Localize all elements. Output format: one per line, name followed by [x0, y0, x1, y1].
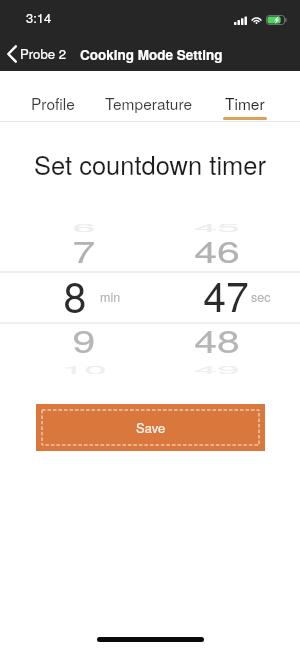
- staticText: 6: [44, 219, 124, 233]
- staticText: 3:14: [26, 8, 52, 27]
- staticText: min: [100, 288, 130, 306]
- staticText: Profile: [31, 92, 75, 114]
- staticText: 9: [44, 317, 124, 357]
- staticText: 46: [177, 227, 257, 266]
- staticText: Probe 2: [20, 44, 67, 63]
- button[interactable]: Back to Probe 2: [0, 36, 77, 71]
- staticText: Save: [136, 418, 166, 437]
- button[interactable]: 6: [0, 196, 300, 376]
- staticText: Timer: [225, 92, 265, 114]
- button[interactable]: Temperature: [101, 71, 197, 122]
- staticText: Temperature: [105, 92, 193, 114]
- staticText: 47: [186, 265, 266, 317]
- staticText: Cooking Mode Setting: [80, 45, 223, 64]
- staticText: 10: [44, 361, 124, 375]
- staticText: Set countdown timer: [0, 146, 300, 183]
- staticText: 48: [177, 317, 257, 357]
- button[interactable]: Timer: [197, 71, 293, 122]
- button[interactable]: Profile: [5, 71, 101, 122]
- button[interactable]: Save: [36, 404, 265, 451]
- other: Cellular signal: [234, 16, 247, 25]
- staticText: sec: [251, 288, 281, 306]
- staticText: 49: [177, 361, 257, 375]
- staticText: 8: [35, 265, 115, 317]
- staticText: 45: [177, 219, 257, 233]
- other: Wi-Fi: [251, 15, 262, 24]
- other: Battery charging: [266, 15, 287, 25]
- staticText: 7: [44, 227, 124, 266]
